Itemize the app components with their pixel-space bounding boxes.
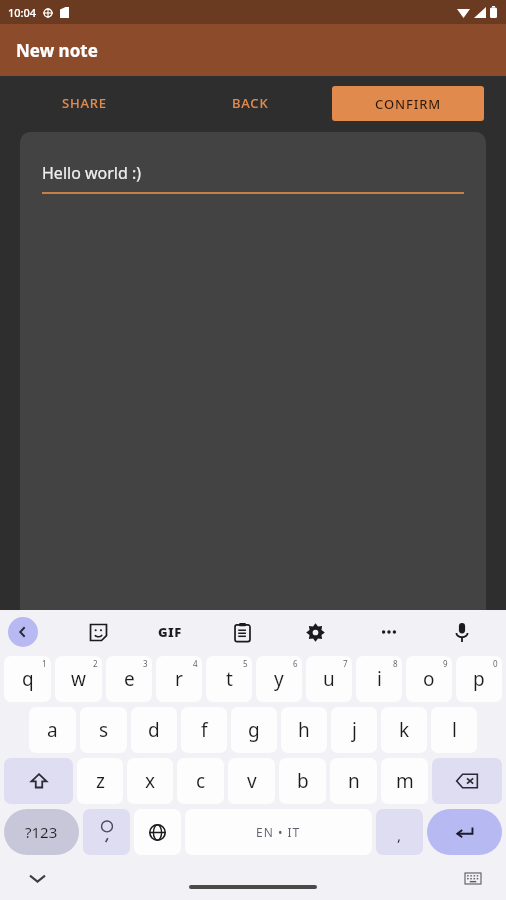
staticText: v: [247, 768, 257, 794]
staticText: m: [396, 768, 414, 794]
button[interactable]: Settings: [279, 610, 352, 654]
button[interactable]: Enter: [427, 809, 502, 855]
button[interactable]: Change language: [134, 809, 181, 855]
staticText: r: [175, 666, 183, 692]
button[interactable]: Backspace: [432, 758, 502, 804]
staticText: d: [148, 717, 160, 743]
staticText: BACK: [232, 94, 269, 112]
staticText: 6: [293, 658, 298, 669]
button[interactable]: s: [80, 707, 127, 753]
button[interactable]: e: [106, 656, 152, 702]
button[interactable]: Voice input: [425, 610, 498, 654]
staticText: a: [47, 717, 58, 743]
staticText: n: [348, 768, 360, 794]
button[interactable]: ?123: [4, 809, 79, 855]
button[interactable]: k: [381, 707, 427, 753]
button[interactable]: n: [330, 758, 377, 804]
staticText: y: [274, 666, 284, 692]
button[interactable]: Switch keyboard: [458, 863, 488, 893]
staticText: CONFIRM: [375, 95, 442, 113]
staticText: New note: [16, 39, 98, 62]
staticText: 2: [93, 658, 98, 669]
staticText: o: [423, 666, 435, 692]
staticText: EN • IT: [256, 824, 301, 840]
button[interactable]: ,: [376, 809, 423, 855]
button[interactable]: m: [381, 758, 428, 804]
button[interactable]: More options: [352, 610, 425, 654]
staticText: i: [377, 666, 382, 692]
button[interactable]: x: [127, 758, 173, 804]
button[interactable]: p: [456, 656, 502, 702]
button[interactable]: j: [331, 707, 377, 753]
button[interactable]: u: [306, 656, 352, 702]
staticText: p: [473, 666, 485, 692]
staticText: z: [96, 768, 105, 794]
button[interactable]: a: [29, 707, 76, 753]
button[interactable]: Clipboard: [206, 610, 279, 654]
staticText: j: [352, 717, 357, 743]
staticText: 1: [42, 658, 47, 669]
button[interactable]: Space: [185, 809, 372, 855]
button[interactable]: Emoji: [83, 809, 130, 855]
staticText: f: [201, 717, 208, 743]
button[interactable]: BACK: [222, 87, 279, 119]
staticText: c: [196, 768, 206, 794]
staticText: x: [145, 768, 156, 794]
button[interactable]: w: [55, 656, 102, 702]
staticText: k: [399, 717, 410, 743]
button[interactable]: c: [177, 758, 224, 804]
staticText: h: [298, 717, 310, 743]
button[interactable]: GIF: [134, 610, 206, 654]
staticText: 3: [143, 658, 148, 669]
button[interactable]: z: [77, 758, 123, 804]
button[interactable]: b: [279, 758, 326, 804]
staticText: 10:04: [8, 5, 37, 20]
button[interactable]: l: [431, 707, 477, 753]
button[interactable]: SHARE: [52, 87, 117, 119]
button[interactable]: Hide keyboard: [20, 861, 54, 895]
button[interactable]: r: [156, 656, 202, 702]
staticText: l: [452, 717, 457, 743]
button[interactable]: CONFIRM: [332, 86, 484, 121]
staticText: Hello world :): [42, 162, 142, 184]
button[interactable]: Stickers: [62, 610, 134, 654]
staticText: s: [99, 717, 109, 743]
staticText: b: [297, 768, 309, 794]
staticText: 4: [193, 658, 198, 669]
button[interactable]: t: [206, 656, 252, 702]
staticText: t: [226, 666, 233, 692]
button[interactable]: f: [181, 707, 227, 753]
staticText: GIF: [158, 623, 182, 641]
button[interactable]: i: [356, 656, 402, 702]
staticText: ?123: [25, 822, 58, 842]
staticText: 9: [443, 658, 448, 669]
button[interactable]: g: [231, 707, 277, 753]
button[interactable]: Hello world :): [42, 162, 464, 194]
staticText: q: [22, 666, 34, 692]
staticText: 7: [343, 658, 348, 669]
staticText: 0: [493, 658, 498, 669]
button[interactable]: Shift: [4, 758, 73, 804]
staticText: e: [124, 666, 135, 692]
staticText: u: [323, 666, 335, 692]
button[interactable]: y: [256, 656, 302, 702]
staticText: 8: [393, 658, 398, 669]
button[interactable]: q: [4, 656, 51, 702]
button[interactable]: v: [228, 758, 275, 804]
staticText: 5: [243, 658, 248, 669]
button[interactable]: d: [131, 707, 177, 753]
button[interactable]: h: [281, 707, 327, 753]
staticText: w: [71, 666, 86, 692]
staticText: SHARE: [62, 94, 107, 112]
staticText: ,: [397, 825, 402, 845]
button[interactable]: o: [406, 656, 452, 702]
button[interactable]: Back: [8, 617, 38, 647]
staticText: g: [248, 717, 260, 743]
